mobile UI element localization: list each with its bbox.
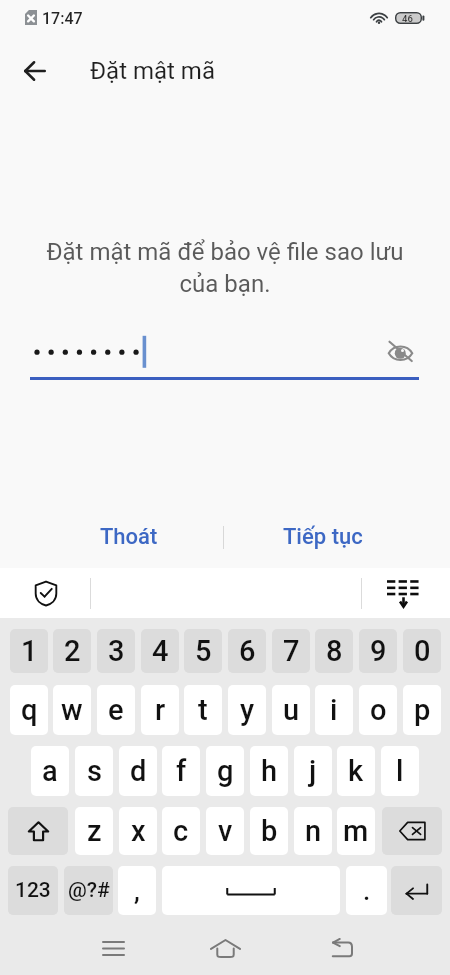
button[interactable]: 1 <box>10 629 48 673</box>
staticText: 4 <box>152 634 169 668</box>
button[interactable]: Recents <box>88 925 138 972</box>
staticText: 46 <box>402 13 413 24</box>
button[interactable]: y <box>228 685 266 735</box>
button[interactable]: Back <box>317 925 367 972</box>
button[interactable]: t <box>184 685 222 735</box>
button[interactable]: 6 <box>228 629 266 673</box>
button[interactable]: 2 <box>53 629 91 673</box>
staticText: i <box>330 693 338 727</box>
staticText: Thoát <box>100 524 158 550</box>
staticText: , <box>134 876 140 906</box>
staticText: 2 <box>64 634 81 668</box>
button[interactable]: g <box>206 746 244 796</box>
staticText: b <box>261 814 278 848</box>
button[interactable]: q <box>10 685 48 735</box>
button[interactable]: i <box>315 685 353 735</box>
staticText: @?# <box>68 878 110 903</box>
button[interactable]: h <box>250 746 288 796</box>
button[interactable]: Shift <box>8 807 68 855</box>
button[interactable]: 8 <box>315 629 353 673</box>
button[interactable]: z <box>75 807 113 855</box>
staticText: o <box>370 693 387 727</box>
button[interactable]: Enter <box>391 866 442 915</box>
button[interactable]: n <box>294 807 332 855</box>
button[interactable]: 0 <box>403 629 441 673</box>
button[interactable]: o <box>359 685 397 735</box>
staticText: Tiếp tục <box>283 524 363 550</box>
staticText: h <box>261 754 278 788</box>
staticText: 7 <box>283 634 300 668</box>
staticText: a <box>42 754 58 788</box>
button[interactable]: v <box>206 807 244 855</box>
button[interactable]: m <box>337 807 375 855</box>
staticText: l <box>396 754 404 788</box>
staticText: y <box>240 693 255 727</box>
button[interactable]: Home <box>200 925 250 972</box>
button[interactable]: 9 <box>359 629 397 673</box>
staticText: p <box>414 693 431 727</box>
staticText: 8 <box>326 634 343 668</box>
button[interactable]: Back <box>13 49 57 93</box>
staticText: e <box>108 693 124 727</box>
button[interactable]: s <box>75 746 113 796</box>
staticText: 3 <box>108 634 125 668</box>
staticText: Đặt mật mã <box>90 57 215 85</box>
button[interactable]: Secure <box>28 575 64 611</box>
button[interactable]: 3 <box>97 629 135 673</box>
button[interactable]: f <box>162 746 200 796</box>
button[interactable]: k <box>337 746 375 796</box>
staticText: m <box>343 814 369 848</box>
staticText: s <box>87 754 102 788</box>
staticText: 1 <box>21 634 38 668</box>
button[interactable]: b <box>250 807 288 855</box>
staticText: x <box>131 814 146 848</box>
staticText: 0 <box>414 634 431 668</box>
button[interactable]: p <box>403 685 441 735</box>
button[interactable]: Backspace <box>382 807 442 855</box>
button[interactable]: 123 <box>8 866 58 915</box>
button[interactable]: x <box>119 807 157 855</box>
button[interactable]: @?# <box>64 866 113 915</box>
button[interactable]: c <box>162 807 200 855</box>
button[interactable]: Hide keyboard <box>384 574 422 612</box>
button[interactable]: , <box>118 866 156 915</box>
button[interactable]: u <box>272 685 310 735</box>
staticText: j <box>309 754 317 788</box>
staticText: u <box>283 693 300 727</box>
button[interactable]: a <box>31 746 69 796</box>
button[interactable]: 5 <box>184 629 222 673</box>
staticText: 9 <box>370 634 387 668</box>
button[interactable]: Thoát <box>59 513 199 561</box>
staticText: c <box>173 814 189 848</box>
staticText: 17:47 <box>42 9 83 28</box>
staticText: n <box>305 814 322 848</box>
button[interactable]: r <box>141 685 179 735</box>
staticText: r <box>155 693 166 727</box>
button[interactable]: . <box>346 866 387 915</box>
button[interactable]: 4 <box>141 629 179 673</box>
button[interactable]: d <box>119 746 157 796</box>
button[interactable]: Space <box>162 866 340 915</box>
staticText: k <box>348 754 364 788</box>
button[interactable]: 7 <box>272 629 310 673</box>
staticText: 5 <box>195 634 212 668</box>
staticText: w <box>61 693 83 727</box>
button[interactable]: Show password <box>380 331 420 371</box>
staticText: z <box>87 814 102 848</box>
staticText: Đặt mật mã để bảo vệ file sao lưu của bạ… <box>44 238 406 298</box>
staticText: v <box>218 814 233 848</box>
button[interactable]: j <box>294 746 332 796</box>
staticText: 123 <box>15 878 51 903</box>
staticText: 6 <box>239 634 256 668</box>
staticText: d <box>130 754 147 788</box>
staticText: f <box>176 754 187 788</box>
staticText: g <box>217 754 234 788</box>
staticText: . <box>363 876 371 906</box>
button[interactable]: e <box>97 685 135 735</box>
button[interactable]: l <box>381 746 419 796</box>
staticText: q <box>21 693 38 727</box>
button[interactable]: Tiếp tục <box>253 513 393 561</box>
staticText: t <box>198 693 208 727</box>
button[interactable]: w <box>53 685 91 735</box>
